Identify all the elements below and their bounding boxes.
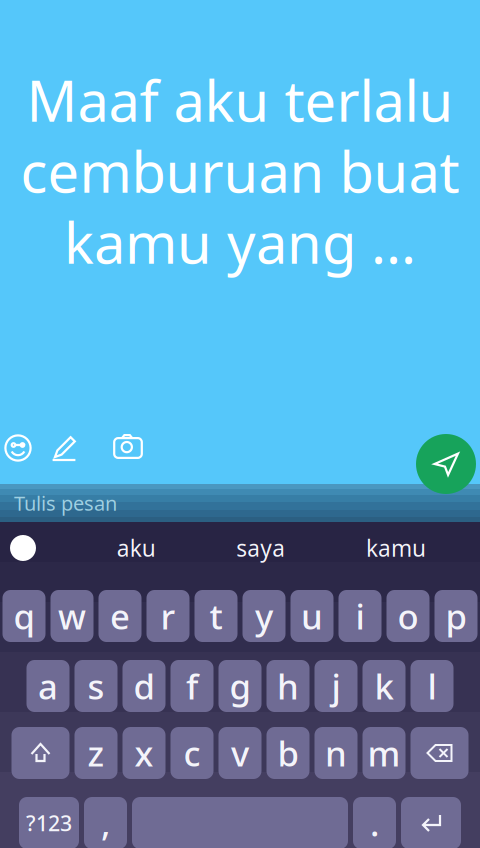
button[interactable]: a: [26, 660, 69, 712]
button[interactable]: s: [74, 660, 117, 712]
staticText: z: [87, 730, 104, 776]
staticText: u: [301, 593, 323, 639]
staticText: f: [186, 663, 198, 709]
button[interactable]: w: [50, 590, 93, 642]
staticText: ,: [101, 800, 110, 846]
staticText: r: [160, 593, 175, 639]
staticText: x: [134, 730, 153, 776]
button[interactable]: kamu: [366, 533, 426, 563]
staticText: b: [277, 730, 298, 776]
staticText: kamu: [366, 533, 426, 563]
button[interactable]: g: [218, 660, 261, 712]
staticText: saya: [236, 533, 285, 563]
staticText: w: [58, 593, 86, 639]
button[interactable]: t: [194, 590, 237, 642]
button[interactable]: r: [146, 590, 189, 642]
staticText: .: [370, 800, 379, 846]
button[interactable]: z: [74, 727, 117, 779]
staticText: Tulis pesan: [14, 490, 117, 516]
staticText: t: [209, 593, 222, 639]
staticText: kamu yang ...: [64, 205, 416, 279]
button[interactable]: Keyboard settings: [10, 535, 36, 561]
staticText: ?123: [26, 809, 72, 837]
button[interactable]: Backspace: [410, 727, 468, 779]
button[interactable]: k: [362, 660, 405, 712]
staticText: o: [397, 593, 418, 639]
button[interactable]: i: [338, 590, 381, 642]
button[interactable]: f: [170, 660, 213, 712]
button[interactable]: Draw: [49, 433, 79, 463]
staticText: m: [367, 730, 400, 776]
staticText: c: [183, 730, 200, 776]
button[interactable]: d: [122, 660, 165, 712]
button[interactable]: x: [122, 727, 165, 779]
button[interactable]: .: [353, 797, 396, 848]
staticText: g: [229, 663, 250, 709]
button[interactable]: ,: [84, 797, 127, 848]
staticText: q: [13, 593, 34, 639]
button[interactable]: j: [314, 660, 357, 712]
button[interactable]: Send: [416, 434, 476, 494]
button[interactable]: saya: [236, 533, 285, 563]
button[interactable]: [132, 797, 348, 848]
staticText: aku: [117, 533, 156, 563]
button[interactable]: ?123: [19, 797, 79, 848]
staticText: y: [255, 593, 273, 639]
button[interactable]: v: [218, 727, 261, 779]
button[interactable]: n: [314, 727, 357, 779]
button[interactable]: l: [410, 660, 453, 712]
staticText: d: [133, 663, 154, 709]
staticText: v: [231, 730, 249, 776]
staticText: p: [445, 593, 466, 639]
button[interactable]: q: [2, 590, 45, 642]
staticText: e: [110, 593, 130, 639]
button[interactable]: m: [362, 727, 405, 779]
staticText: a: [38, 663, 58, 709]
button[interactable]: u: [290, 590, 333, 642]
button[interactable]: Shift: [11, 727, 69, 779]
button[interactable]: e: [98, 590, 141, 642]
button[interactable]: b: [266, 727, 309, 779]
staticText: j: [331, 663, 340, 709]
staticText: i: [355, 593, 364, 639]
staticText: Maaf aku terlalu: [26, 63, 453, 137]
button[interactable]: y: [242, 590, 285, 642]
staticText: h: [277, 663, 299, 709]
button[interactable]: Camera: [113, 433, 143, 463]
button[interactable]: Emoji: [3, 433, 33, 463]
button[interactable]: Enter: [401, 797, 461, 848]
button[interactable]: c: [170, 727, 213, 779]
staticText: l: [427, 663, 436, 709]
button[interactable]: aku: [117, 533, 156, 563]
staticText: cemburuan buat: [20, 134, 459, 208]
button[interactable]: p: [434, 590, 477, 642]
staticText: k: [374, 663, 393, 709]
staticText: s: [87, 663, 104, 709]
staticText: n: [325, 730, 347, 776]
button[interactable]: o: [386, 590, 429, 642]
button[interactable]: h: [266, 660, 309, 712]
